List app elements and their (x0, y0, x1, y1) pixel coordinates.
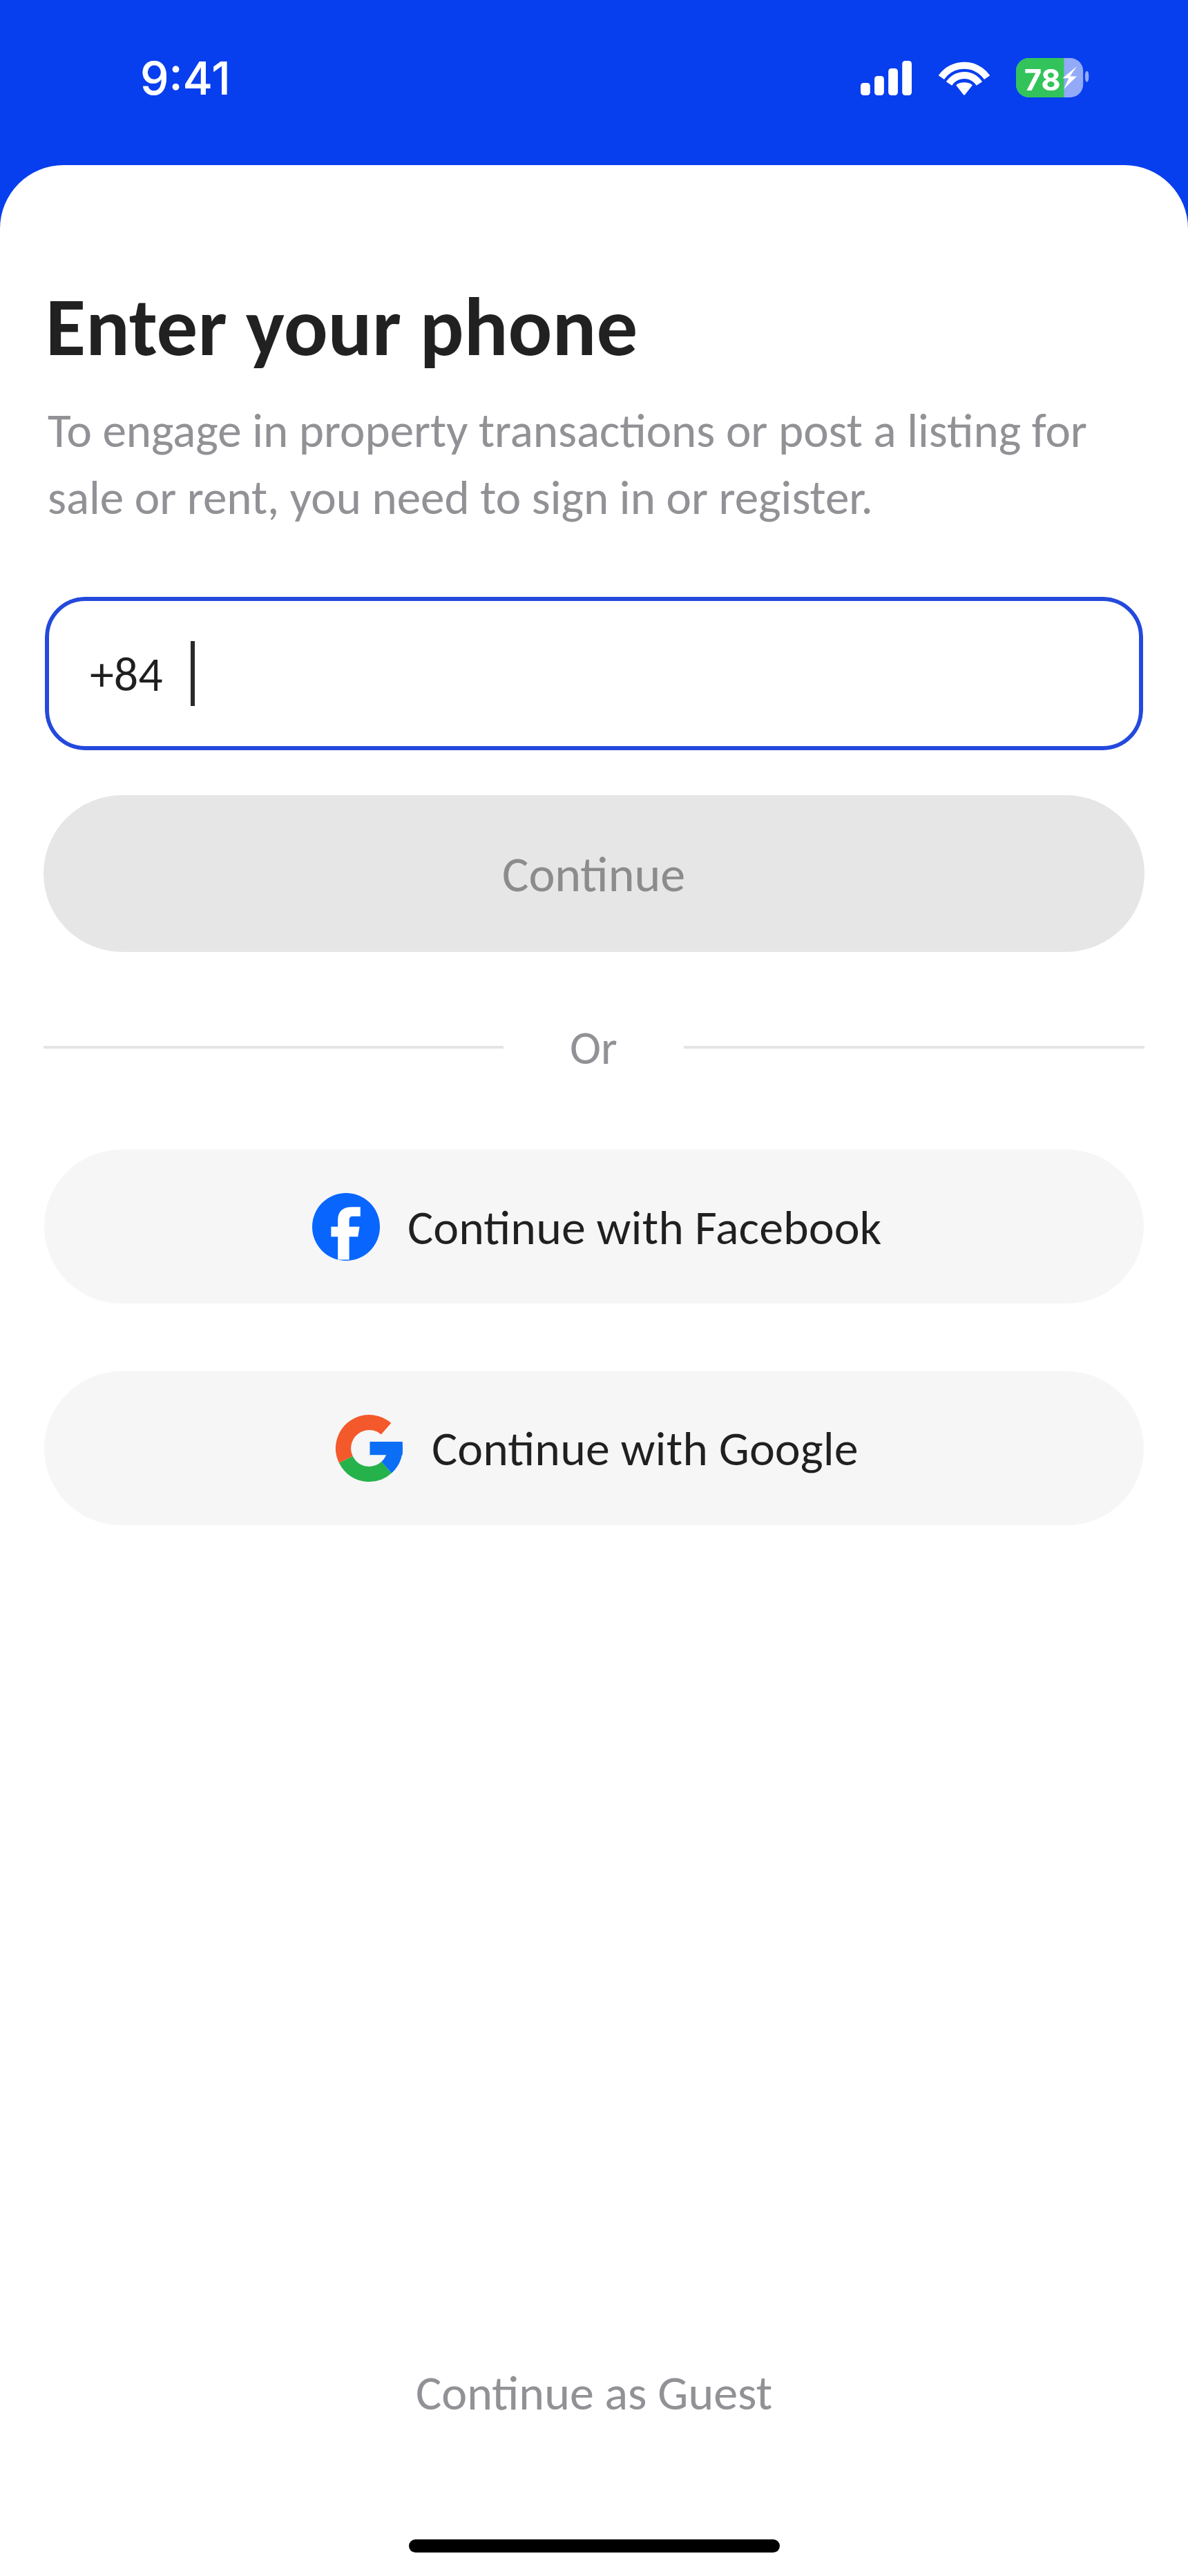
other: Wi-Fi (941, 58, 988, 97)
staticText: Or (570, 1019, 617, 1076)
staticText: Continue with Facebook (408, 1198, 882, 1257)
staticText: Continue with Google (432, 1419, 859, 1478)
staticText: 78 (1024, 61, 1061, 97)
button[interactable]: Continue with Google (44, 1371, 1144, 1525)
button[interactable]: Phone number input (45, 597, 1143, 750)
button[interactable]: Continue (44, 795, 1144, 952)
staticText: Enter your phone (46, 277, 638, 377)
button[interactable]: Continue with Facebook (44, 1149, 1144, 1304)
button[interactable]: Continue as Guest (0, 2351, 1188, 2434)
staticText: +84 (90, 645, 163, 703)
staticText: 9:41 (140, 50, 231, 106)
staticText: Continue (502, 843, 686, 904)
other: Battery 78 percent charging (1016, 58, 1091, 97)
staticText: To engage in property transactions or po… (48, 401, 1115, 527)
staticText: Continue as Guest (416, 2363, 773, 2422)
other: Cellular signal (861, 61, 912, 95)
